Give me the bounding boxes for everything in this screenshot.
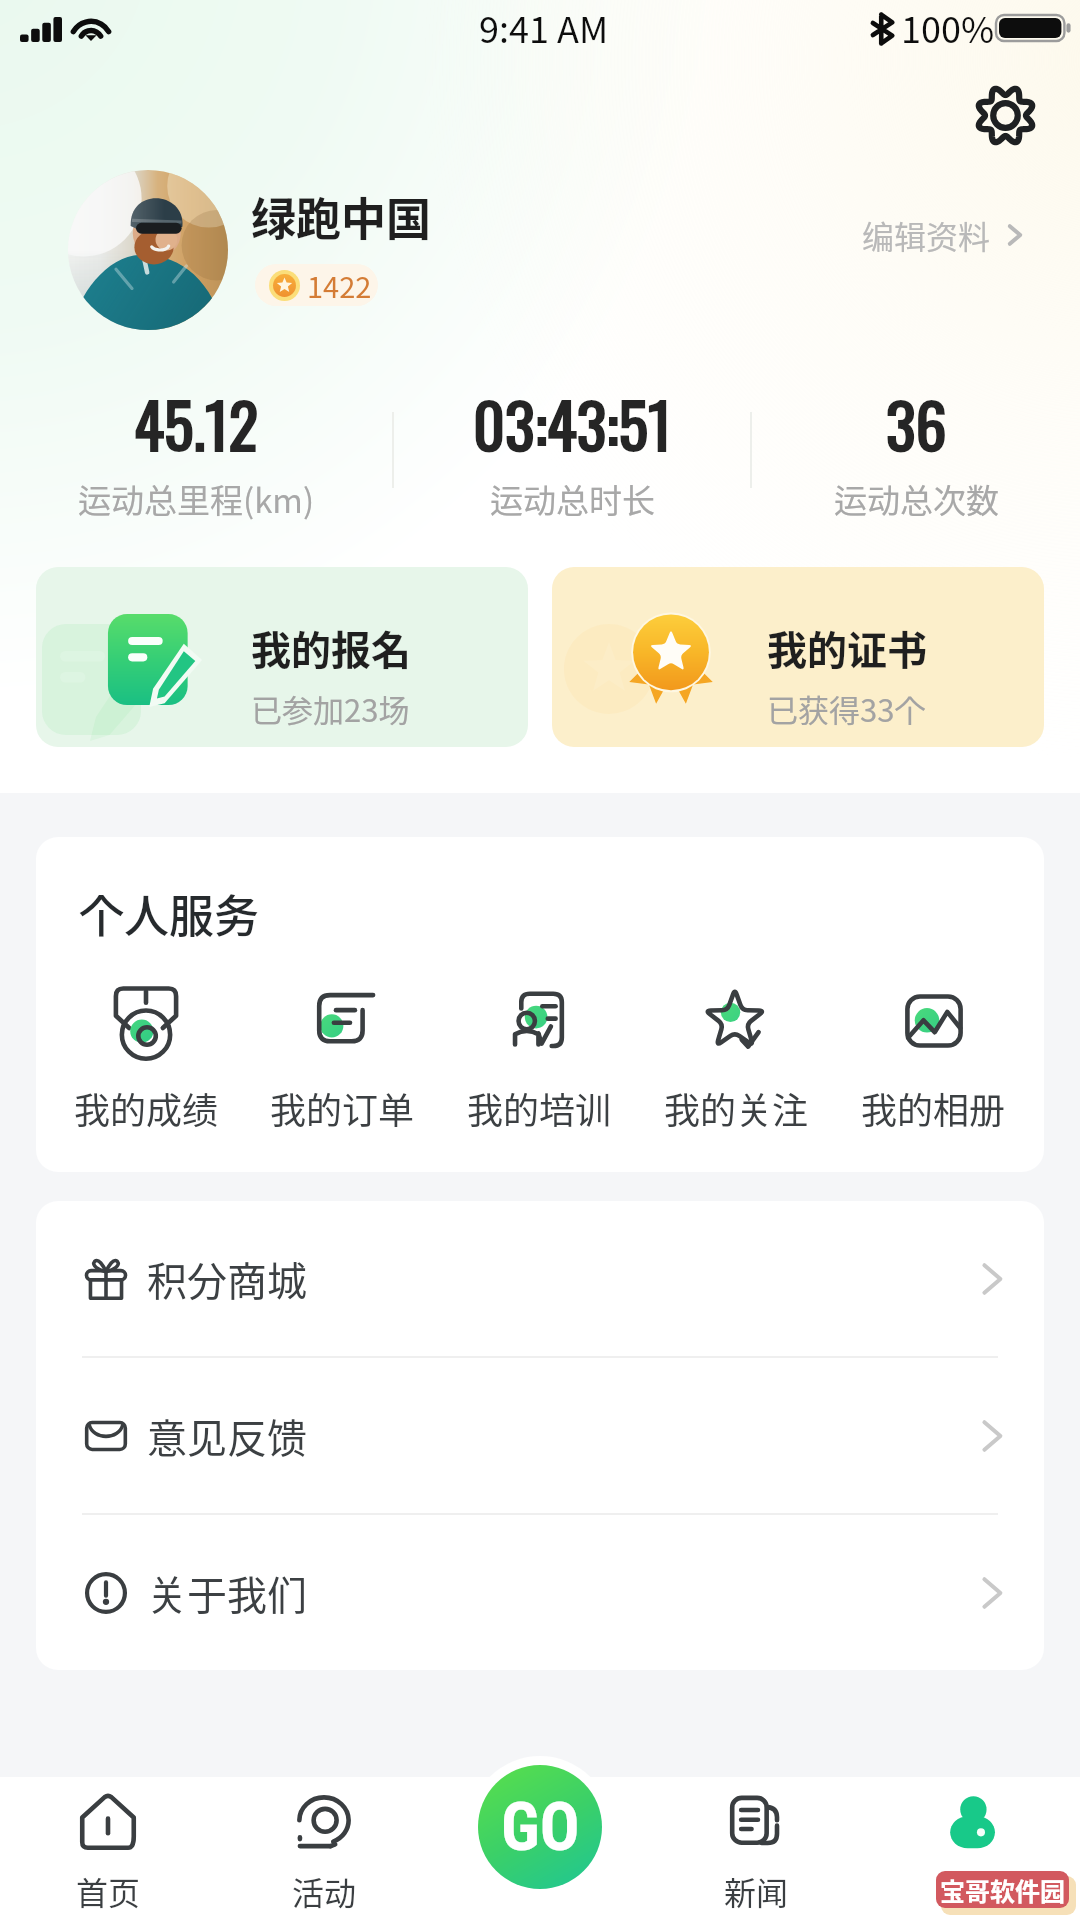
- staticText: 我的订单: [270, 1082, 415, 1134]
- staticText: 我的证书: [767, 619, 927, 677]
- staticText: 意见反馈: [147, 1407, 307, 1465]
- staticText: 45.12: [134, 377, 259, 469]
- staticText: 运动总里程(km): [78, 475, 315, 523]
- button[interactable]: 我的证书: [552, 567, 1044, 747]
- button[interactable]: 首页: [0, 1777, 216, 1920]
- staticText: 我的成绩: [74, 1082, 219, 1134]
- button[interactable]: GO start running: [478, 1765, 602, 1889]
- staticText: 我的关注: [664, 1082, 809, 1134]
- button[interactable]: 活动: [216, 1777, 432, 1920]
- staticText: 我的相册: [861, 1082, 1006, 1134]
- button[interactable]: 积分商城: [36, 1201, 1044, 1356]
- staticText: 我的培训: [467, 1082, 612, 1134]
- staticText: 编辑资料: [862, 212, 991, 258]
- button[interactable]: 我的: [864, 1777, 1080, 1920]
- button[interactable]: 我的相册: [835, 982, 1032, 1134]
- button[interactable]: 新闻: [648, 1777, 864, 1920]
- button[interactable]: Settings: [956, 66, 1054, 164]
- staticText: 宝哥软件园: [940, 1872, 1066, 1908]
- staticText: 已参加23场: [251, 686, 410, 731]
- staticText: 活动: [292, 1868, 357, 1914]
- staticText: GO: [501, 1789, 580, 1866]
- staticText: 03:43:51: [473, 377, 672, 469]
- button[interactable]: 我的订单: [244, 982, 441, 1134]
- staticText: 已获得33个: [767, 686, 926, 731]
- button[interactable]: 我的关注: [638, 982, 835, 1134]
- staticText: 1422: [307, 264, 372, 306]
- staticText: 绿跑中国: [251, 184, 432, 249]
- staticText: 运动总时长: [490, 475, 655, 523]
- button[interactable]: 关于我们: [36, 1515, 1044, 1670]
- staticText: 新闻: [724, 1868, 789, 1914]
- button[interactable]: 我的成绩: [48, 982, 244, 1134]
- staticText: 首页: [76, 1868, 141, 1914]
- button[interactable]: 编辑资料: [862, 212, 1027, 258]
- staticText: 我的报名: [251, 619, 411, 677]
- staticText: 36: [886, 377, 947, 469]
- staticText: 运动总次数: [834, 475, 999, 523]
- staticText: 积分商城: [147, 1250, 307, 1308]
- staticText: 个人服务: [79, 881, 260, 946]
- button[interactable]: 意见反馈: [36, 1358, 1044, 1513]
- button[interactable]: 1422: [255, 264, 378, 306]
- staticText: 100%: [901, 1, 995, 53]
- button[interactable]: 我的报名: [36, 567, 528, 747]
- button[interactable]: 我的培训: [441, 982, 638, 1134]
- staticText: 关于我们: [147, 1564, 307, 1622]
- staticText: 我的: [940, 1868, 1005, 1914]
- staticText: 9:41 AM: [479, 1, 609, 53]
